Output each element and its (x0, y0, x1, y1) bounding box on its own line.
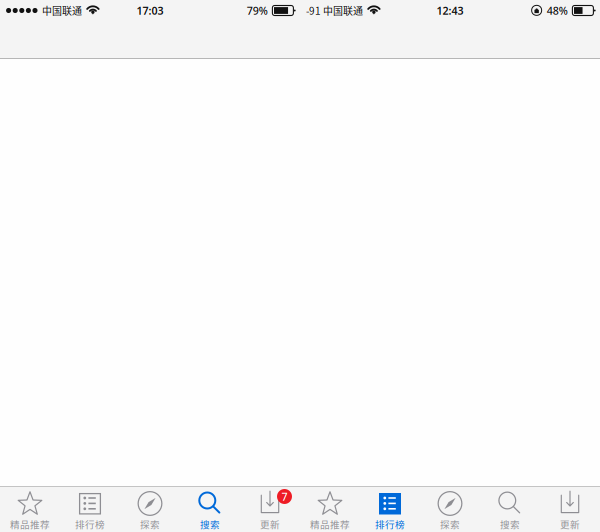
button[interactable]: 排行榜 (60, 487, 120, 532)
button[interactable]: 精品推荐 (0, 487, 60, 532)
button[interactable]: 探索 (120, 487, 180, 532)
button[interactable]: 搜索 (180, 487, 240, 532)
staticText: 更新 (260, 517, 280, 531)
button[interactable]: 排行榜 (360, 487, 420, 532)
staticText: 排行榜 (375, 517, 405, 531)
button[interactable]: 搜索 (480, 487, 540, 532)
button[interactable]: 探索 (420, 487, 480, 532)
button[interactable]: 更新 (540, 487, 600, 532)
staticText: -91 中国联通 (306, 3, 363, 18)
staticText: 精品推荐 (10, 517, 50, 531)
staticText: 7 (281, 489, 287, 504)
staticText: 探索 (140, 517, 160, 531)
staticText: 精品推荐 (310, 517, 350, 531)
staticText: 12:43 (436, 3, 463, 18)
staticText: 搜索 (200, 517, 220, 531)
button[interactable]: 7 (240, 487, 300, 532)
staticText: 探索 (440, 517, 460, 531)
staticText: 79% (247, 3, 268, 18)
staticText: 更新 (560, 517, 580, 531)
staticText: 搜索 (500, 517, 520, 531)
button[interactable]: 精品推荐 (300, 487, 360, 532)
staticText: 48% (547, 3, 568, 18)
staticText: 中国联通 (42, 3, 82, 18)
staticText: 排行榜 (75, 517, 105, 531)
staticText: 17:03 (136, 3, 163, 18)
